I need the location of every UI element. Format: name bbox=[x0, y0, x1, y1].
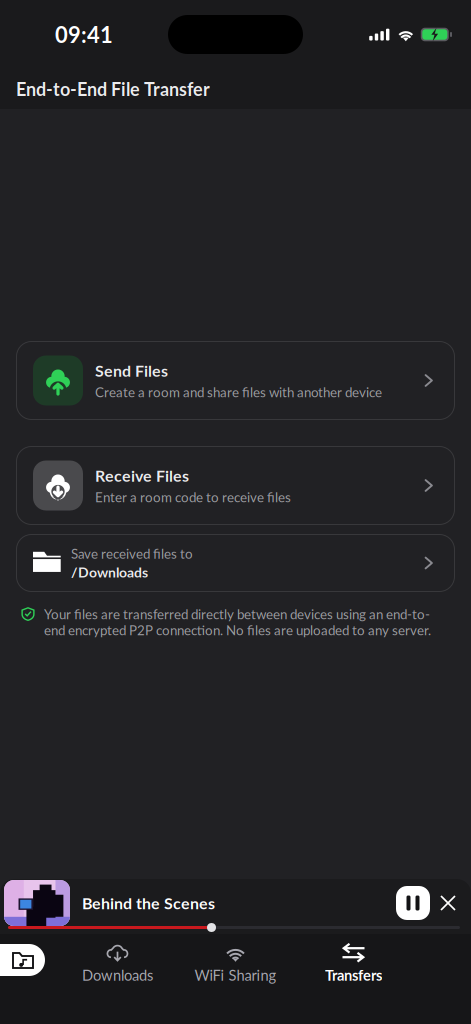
staticText: Save received files to bbox=[71, 546, 193, 562]
staticText: Receive Files bbox=[95, 466, 189, 485]
button[interactable]: Receive Files bbox=[16, 446, 455, 525]
button[interactable]: Transfers bbox=[294, 934, 412, 992]
staticText: End-to-End File Transfer bbox=[16, 78, 210, 100]
staticText: Transfers bbox=[325, 966, 382, 984]
button[interactable]: Close bbox=[430, 885, 466, 921]
staticText: Downloads bbox=[82, 966, 153, 984]
button[interactable]: Pause bbox=[396, 886, 430, 920]
button[interactable]: WiFi Sharing bbox=[176, 934, 294, 992]
staticText: Enter a room code to receive files bbox=[95, 489, 291, 505]
staticText: 09:41 bbox=[55, 21, 113, 48]
staticText: Your files are transferred directly betw… bbox=[44, 606, 431, 638]
staticText: Create a room and share files with anoth… bbox=[95, 384, 382, 400]
button[interactable]: Music library bbox=[0, 944, 45, 976]
button[interactable]: Downloads bbox=[58, 934, 176, 992]
staticText: Behind the Scenes bbox=[82, 893, 215, 913]
staticText: /Downloads bbox=[71, 564, 148, 580]
button[interactable]: Send Files bbox=[16, 341, 455, 420]
button[interactable]: Save received files to bbox=[16, 534, 455, 592]
staticText: WiFi Sharing bbox=[194, 966, 276, 984]
staticText: Send Files bbox=[95, 361, 168, 380]
